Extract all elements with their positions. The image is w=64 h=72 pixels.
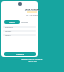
staticText: Experience	[5, 26, 13, 28]
staticText: Sign in here	[28, 60, 37, 62]
staticText: Portfolio	[5, 30, 12, 32]
button[interactable]: Message	[21, 20, 29, 24]
button[interactable]: Contact	[3, 34, 36, 36]
staticText: Follow	[9, 21, 15, 24]
button[interactable]: Portfolio	[3, 30, 36, 32]
button[interactable]: Experience	[3, 26, 36, 28]
button[interactable]: Continue	[4, 52, 36, 56]
staticText: Jane Cooper	[25, 7, 40, 10]
staticText: 4.9 · 120 reviews	[26, 14, 39, 16]
button[interactable]: Follow	[4, 20, 20, 24]
staticText: Contact	[5, 34, 11, 36]
staticText: Already have an account?	[21, 58, 43, 60]
staticText: Product Designer	[25, 9, 40, 11]
staticText: Message	[21, 21, 29, 23]
staticText: Continue	[16, 53, 25, 56]
